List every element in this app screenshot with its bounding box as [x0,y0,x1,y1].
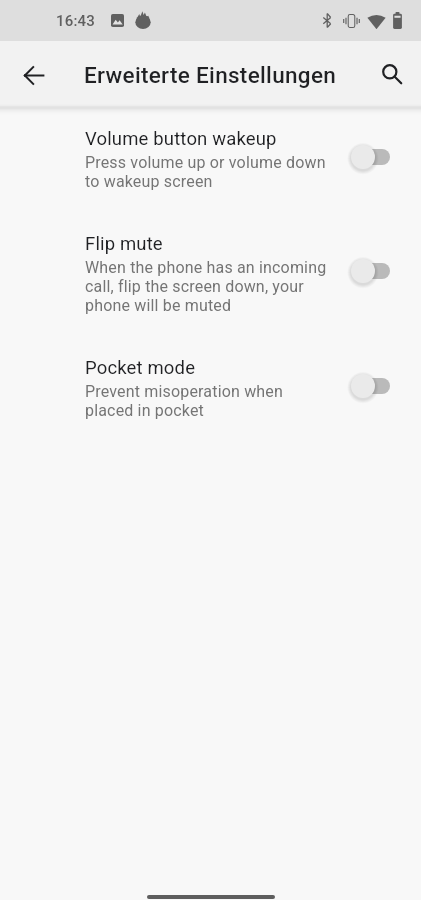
button[interactable]: Volume button wakeup [0,110,421,212]
staticText: Volume button wakeup [85,128,277,150]
button[interactable]: Toggle [351,257,389,285]
staticText: Erweiterte Einstellungen [84,62,337,88]
staticText: Press volume up or volume down to wakeup… [85,153,326,191]
button[interactable]: Toggle [351,143,389,171]
button[interactable]: Search [364,46,420,102]
button[interactable]: Flip mute [0,212,421,336]
staticText: Prevent misoperation when placed in pock… [85,382,283,420]
button[interactable]: Pocket mode [0,336,421,441]
staticText: Flip mute [85,233,163,255]
button[interactable]: Home [0,886,421,900]
staticText: 16:43 [56,12,96,30]
button[interactable]: Toggle [351,372,389,400]
staticText: When the phone has an incoming call, fli… [85,258,327,315]
staticText: Pocket mode [85,357,196,379]
button[interactable]: Back [6,47,62,103]
